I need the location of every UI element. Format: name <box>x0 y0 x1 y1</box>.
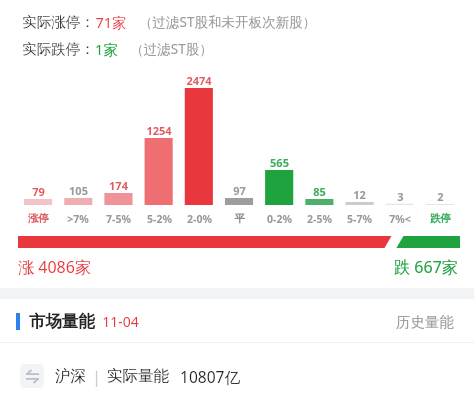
staticText: 105 <box>69 183 88 198</box>
staticText: 11-04 <box>102 312 139 331</box>
button[interactable]: 历史量能 <box>392 308 458 336</box>
staticText: 2-5% <box>307 212 332 226</box>
staticText: 历史量能 <box>396 313 454 331</box>
staticText: 2 <box>437 189 444 204</box>
other: 切换市场 <box>20 364 44 388</box>
staticText: 5-7% <box>347 212 372 226</box>
staticText: 市场量能 <box>29 311 95 332</box>
staticText: >7% <box>67 212 89 226</box>
staticText: 5-2% <box>147 212 172 226</box>
staticText: 71家 <box>95 12 127 32</box>
staticText: 1254 <box>146 123 172 138</box>
staticText: 跌停 <box>430 212 451 225</box>
staticText: 85 <box>313 184 326 199</box>
staticText: | <box>92 366 101 387</box>
staticText: 平 <box>234 212 245 225</box>
staticText: 174 <box>109 178 128 193</box>
staticText: 实际量能 <box>107 366 169 386</box>
staticText: 7%< <box>389 212 411 226</box>
staticText: 2-0% <box>187 212 212 226</box>
staticText: 沪深 <box>55 366 86 386</box>
staticText: 0-2% <box>267 212 292 226</box>
staticText: 79 <box>32 184 45 199</box>
staticText: 3 <box>397 189 404 204</box>
staticText: 涨 4086家 <box>18 256 91 278</box>
staticText: （过滤ST股和未开板次新股） <box>139 13 316 31</box>
staticText: 12 <box>353 187 366 202</box>
staticText: 565 <box>270 155 289 170</box>
staticText: 1家 <box>95 39 118 59</box>
button[interactable]: 切换市场 <box>0 356 474 396</box>
staticText: 97 <box>233 183 246 198</box>
staticText: 跌 667家 <box>394 256 458 278</box>
staticText: 2474 <box>186 73 212 88</box>
staticText: 10807亿 <box>180 366 240 387</box>
staticText: 实际跌停： <box>22 40 95 58</box>
staticText: 涨停 <box>28 212 49 225</box>
staticText: 实际涨停： <box>22 13 95 31</box>
staticText: 7-5% <box>106 212 131 226</box>
staticText: （过滤ST股） <box>130 40 213 58</box>
